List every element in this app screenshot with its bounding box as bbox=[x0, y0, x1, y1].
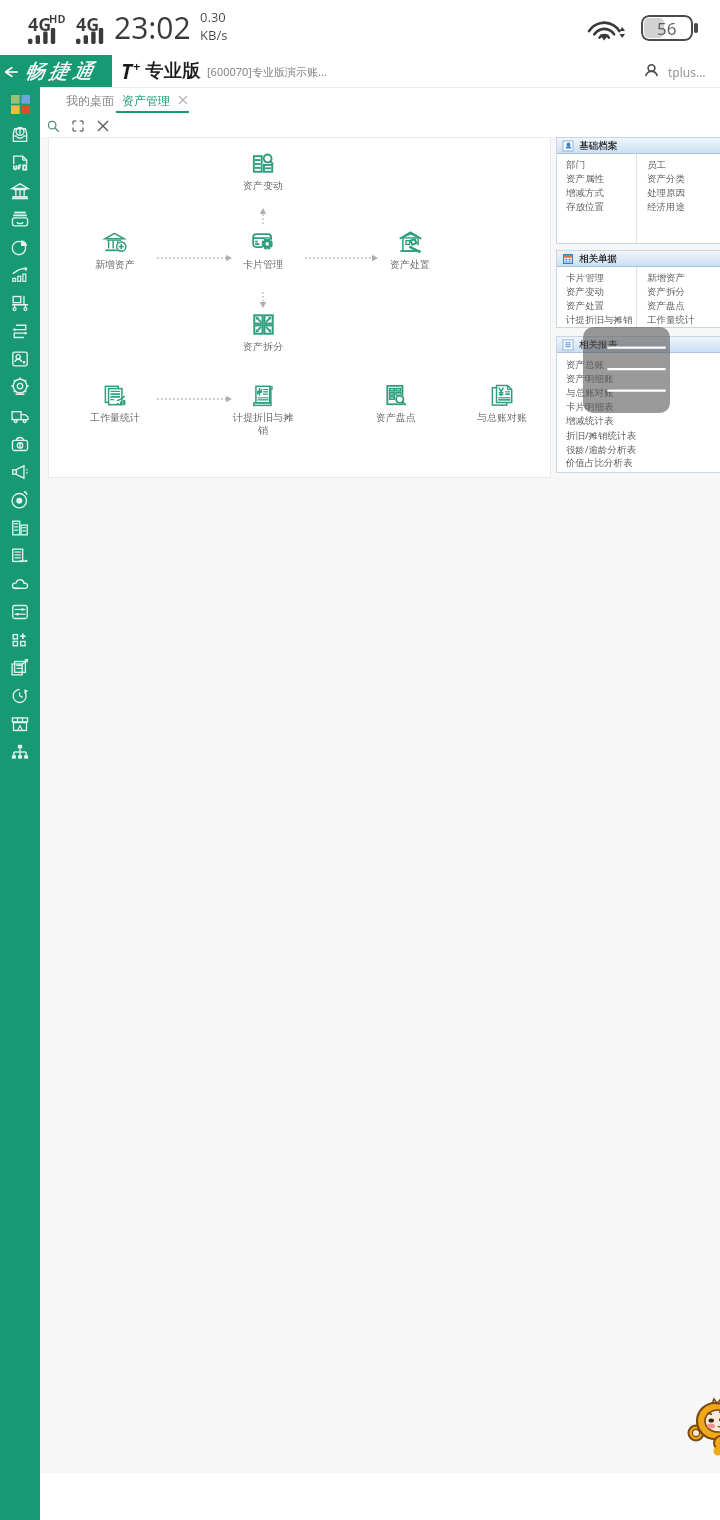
staticText: 役龄/逾龄分析表 bbox=[566, 443, 637, 456]
button[interactable]: 工作量统计 bbox=[647, 313, 695, 327]
button[interactable]: 计提折旧与摊 销 bbox=[227, 384, 299, 437]
other: Back bbox=[4, 65, 18, 79]
staticText: 23:02 bbox=[114, 7, 191, 48]
staticText: 工作量统计 bbox=[647, 314, 695, 326]
button[interactable]: 与总账对账 bbox=[466, 384, 538, 424]
button[interactable]: 资产总账 bbox=[566, 358, 604, 372]
button[interactable]: target bbox=[8, 487, 32, 513]
staticText: 资产变动 bbox=[566, 286, 604, 298]
staticText: 相关单据 bbox=[579, 253, 617, 265]
staticText: 员工 bbox=[647, 159, 666, 171]
button[interactable]: 经济用途 bbox=[647, 200, 685, 214]
button[interactable]: 资产处置 bbox=[374, 231, 446, 271]
button[interactable]: swap bbox=[8, 318, 32, 344]
button[interactable]: 增减统计表 bbox=[566, 414, 614, 428]
button[interactable]: 计提折旧与摊销 bbox=[566, 313, 633, 327]
button[interactable]: gear bbox=[8, 374, 32, 400]
button[interactable]: slider bbox=[8, 599, 32, 625]
button[interactable]: 资产拆分 bbox=[647, 285, 685, 299]
staticText: 资产处置 bbox=[566, 300, 604, 312]
button[interactable]: 我的桌面 bbox=[56, 88, 124, 112]
staticText: 存放位置 bbox=[566, 201, 604, 213]
button[interactable]: edit bbox=[8, 655, 32, 681]
button[interactable]: 与总账对账 bbox=[566, 386, 614, 400]
button[interactable]: 资产分类 bbox=[647, 172, 685, 186]
button[interactable]: clock bbox=[8, 683, 32, 709]
staticText: 资产总账 bbox=[566, 359, 604, 371]
button[interactable]: Apps menu bbox=[11, 95, 30, 114]
button[interactable]: 员工 bbox=[647, 158, 666, 172]
button[interactable]: 资产管理 bbox=[114, 88, 195, 112]
button[interactable]: 价值占比分析表 bbox=[566, 456, 633, 470]
staticText: 资产处置 bbox=[390, 258, 430, 271]
button[interactable]: 卡片管理 bbox=[227, 231, 299, 271]
staticText: 与总账对账 bbox=[566, 387, 614, 399]
staticText: 相关报表 bbox=[579, 339, 617, 351]
button[interactable]: bag bbox=[8, 431, 32, 457]
staticText: 增减统计表 bbox=[566, 415, 614, 427]
button[interactable]: 部门 bbox=[566, 158, 585, 172]
button[interactable]: 工作量统计 bbox=[79, 384, 151, 424]
button[interactable]: 卡片管理 bbox=[566, 271, 604, 285]
staticText: 0.30 bbox=[200, 8, 226, 26]
button[interactable]: cart bbox=[8, 290, 32, 316]
button[interactable]: 存放位置 bbox=[566, 200, 604, 214]
button[interactable]: apps bbox=[8, 627, 32, 653]
button[interactable]: 资产明细账 bbox=[566, 372, 614, 386]
button[interactable]: 资产变动 bbox=[566, 285, 604, 299]
button[interactable]: 役龄/逾龄分析表 bbox=[566, 442, 637, 456]
button[interactable]: doc bbox=[8, 543, 32, 569]
button[interactable]: 处理原因 bbox=[647, 186, 685, 200]
button[interactable]: 新增资产 bbox=[79, 231, 151, 271]
button[interactable]: 卡片明细表 bbox=[566, 400, 614, 414]
staticText: 资产盘点 bbox=[647, 300, 685, 312]
other: Close tab bbox=[179, 96, 187, 104]
button[interactable]: 折旧/摊销统计表 bbox=[566, 428, 637, 442]
button[interactable]: building bbox=[8, 515, 32, 541]
button[interactable]: pie bbox=[8, 234, 32, 260]
button[interactable]: 资产拆分 bbox=[227, 313, 299, 353]
staticText: 卡片管理 bbox=[243, 258, 283, 271]
button[interactable]: Assistant bbox=[690, 1396, 720, 1452]
button[interactable]: Expand bbox=[68, 116, 88, 136]
button[interactable]: 增减方式 bbox=[566, 186, 604, 200]
staticText: 资产明细账 bbox=[566, 373, 614, 385]
button[interactable]: person bbox=[8, 346, 32, 372]
button[interactable]: Back bbox=[0, 55, 112, 88]
button[interactable]: store bbox=[8, 711, 32, 737]
button[interactable]: bank bbox=[8, 178, 32, 204]
button[interactable]: horn bbox=[8, 459, 32, 485]
button[interactable]: 资产处置 bbox=[566, 299, 604, 313]
staticText: KB/s bbox=[200, 26, 228, 44]
staticText: + bbox=[133, 57, 141, 75]
button[interactable]: box bbox=[8, 122, 32, 148]
button[interactable]: net bbox=[8, 739, 32, 765]
staticText: [600070]专业版演示账… bbox=[207, 64, 327, 79]
staticText: 资产拆分 bbox=[243, 340, 283, 353]
button[interactable]: 资产盘点 bbox=[647, 299, 685, 313]
button[interactable]: 资产属性 bbox=[566, 172, 604, 186]
staticText: tplus… bbox=[668, 64, 706, 80]
button[interactable]: truck bbox=[8, 403, 32, 429]
staticText: 折旧/摊销统计表 bbox=[566, 429, 637, 442]
staticText: 56 bbox=[657, 17, 677, 40]
staticText: 经济用途 bbox=[647, 201, 685, 213]
button[interactable]: Close bbox=[93, 116, 113, 136]
button[interactable]: cloud bbox=[8, 571, 32, 597]
button[interactable]: ufo bbox=[8, 150, 32, 176]
staticText: 4G bbox=[28, 12, 52, 37]
button[interactable]: chart bbox=[8, 262, 32, 288]
staticText: 资产管理 bbox=[122, 93, 170, 108]
button[interactable]: 新增资产 bbox=[647, 271, 685, 285]
staticText: 价值占比分析表 bbox=[566, 457, 633, 469]
button[interactable]: Menu bbox=[583, 327, 670, 413]
staticText: 新增资产 bbox=[647, 272, 685, 284]
staticText: 新增资产 bbox=[95, 258, 135, 271]
staticText: 与总账对账 bbox=[477, 411, 527, 424]
button[interactable]: Search bbox=[43, 116, 63, 136]
button[interactable]: 资产盘点 bbox=[360, 384, 432, 424]
button[interactable]: 资产变动 bbox=[227, 152, 299, 192]
button[interactable]: tplus… bbox=[641, 63, 708, 80]
staticText: 4G bbox=[76, 12, 100, 37]
button[interactable]: drawer bbox=[8, 206, 32, 232]
